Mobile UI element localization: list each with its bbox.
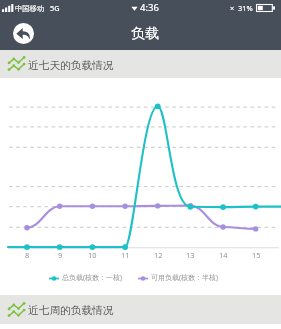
staticText: 15 [252,250,261,260]
staticText: 可用负载(核数：半核) [151,273,219,283]
staticText: 中国移动 [15,4,45,13]
staticText: 8 [25,250,30,260]
staticText: 10 [88,250,97,260]
staticText: 总负载(核数：一核) [62,273,123,283]
button[interactable]: 近七周的负载情况 [0,295,281,324]
staticText: 9 [58,250,63,260]
staticText: 12 [154,250,163,260]
staticText: 4:36 [140,1,159,14]
staticText: 31% [238,3,253,13]
button[interactable]: Back [13,23,34,44]
staticText: 11 [121,250,130,260]
staticText: 负载 [131,25,159,43]
staticText: 近七天的负载情况 [28,59,114,72]
staticText: × [230,3,235,13]
staticText: 5G [50,3,60,13]
button[interactable]: 近七天的负载情况 [0,50,281,78]
staticText: 近七周的负载情况 [28,304,114,317]
staticText: 14 [219,250,228,260]
staticText: 13 [186,250,195,260]
